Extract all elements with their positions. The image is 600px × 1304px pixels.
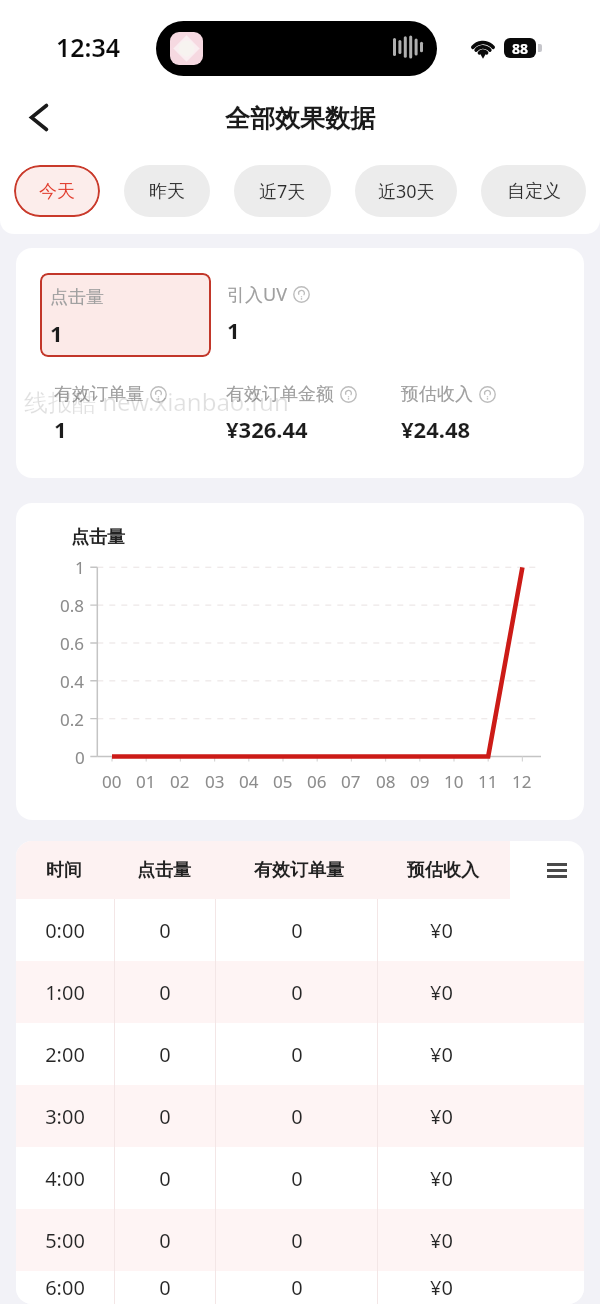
staticText: 0: [159, 1103, 171, 1130]
button[interactable]: Back: [14, 92, 64, 142]
button[interactable]: 5:00: [16, 1209, 584, 1271]
staticText: 预估收入: [407, 859, 479, 882]
staticText: 5:00: [45, 1227, 85, 1254]
button[interactable]: 1:00: [16, 961, 584, 1023]
staticText: 01: [136, 770, 156, 792]
staticText: 昨天: [149, 180, 185, 203]
button[interactable]: 今天: [14, 165, 100, 217]
staticText: 4:00: [45, 1165, 85, 1192]
staticText: 点击量: [71, 526, 125, 549]
staticText: 12: [512, 770, 532, 792]
staticText: 1: [75, 556, 85, 578]
staticText: 03: [205, 770, 225, 792]
staticText: 3:00: [45, 1103, 85, 1130]
staticText: 有效订单金额: [226, 383, 334, 406]
staticText: 0: [159, 917, 171, 944]
staticText: 0: [75, 746, 85, 768]
staticText: 今天: [39, 180, 75, 203]
staticText: 全部效果数据: [225, 103, 375, 134]
staticText: ¥0: [430, 917, 453, 944]
staticText: 自定义: [507, 180, 561, 203]
staticText: 0: [159, 1165, 171, 1192]
button[interactable]: 点击量: [40, 273, 211, 357]
button[interactable]: 2:00: [16, 1023, 584, 1085]
staticText: 11: [478, 770, 498, 792]
staticText: 1: [50, 318, 63, 348]
staticText: 引入UV: [227, 282, 287, 307]
staticText: 0.6: [60, 632, 85, 654]
button[interactable]: 0:00: [16, 899, 584, 961]
staticText: 1:00: [45, 979, 85, 1006]
staticText: 有效订单量: [54, 383, 144, 406]
staticText: 1: [227, 315, 240, 345]
staticText: 有效订单量: [254, 859, 344, 882]
button[interactable]: 4:00: [16, 1147, 584, 1209]
button[interactable]: 近30天: [355, 165, 457, 217]
staticText: 预估收入: [401, 383, 473, 406]
staticText: 10: [444, 770, 464, 792]
staticText: 04: [239, 770, 259, 792]
staticText: 6:00: [45, 1274, 85, 1301]
staticText: ¥24.48: [401, 414, 471, 444]
staticText: 时间: [46, 859, 82, 882]
staticText: 0:00: [45, 917, 85, 944]
button[interactable]: 自定义: [481, 165, 586, 217]
staticText: ¥0: [430, 979, 453, 1006]
button[interactable]: 昨天: [124, 165, 210, 217]
button[interactable]: More options: [530, 841, 584, 899]
staticText: 0: [159, 1274, 171, 1301]
staticText: 06: [307, 770, 327, 792]
staticText: 0: [291, 1227, 303, 1254]
staticText: ¥326.44: [226, 414, 308, 444]
staticText: ¥0: [430, 1227, 453, 1254]
staticText: 0: [159, 1041, 171, 1068]
staticText: 02: [170, 770, 190, 792]
staticText: 00: [102, 770, 122, 792]
staticText: 1: [54, 414, 67, 444]
staticText: ¥0: [430, 1041, 453, 1068]
staticText: 07: [341, 770, 361, 792]
staticText: ¥0: [430, 1274, 453, 1301]
staticText: 点击量: [137, 859, 191, 882]
staticText: 88: [512, 39, 529, 58]
staticText: 0.2: [60, 708, 85, 730]
staticText: ¥0: [430, 1103, 453, 1130]
staticText: 0: [159, 1227, 171, 1254]
staticText: 0: [159, 979, 171, 1006]
staticText: 0: [291, 1103, 303, 1130]
staticText: 2:00: [45, 1041, 85, 1068]
staticText: 0: [291, 1041, 303, 1068]
staticText: 05: [273, 770, 293, 792]
button[interactable]: 6:00: [16, 1271, 584, 1304]
button[interactable]: 3:00: [16, 1085, 584, 1147]
staticText: 0: [291, 1274, 303, 1301]
staticText: 0: [291, 917, 303, 944]
staticText: 12:34: [56, 30, 121, 64]
staticText: 0: [291, 1165, 303, 1192]
staticText: 近7天: [259, 179, 306, 204]
staticText: 0: [291, 979, 303, 1006]
staticText: 点击量: [50, 286, 104, 309]
staticText: 线报酷 new.xianbao.fun: [24, 385, 289, 418]
staticText: 0.8: [60, 594, 85, 616]
staticText: 08: [376, 770, 396, 792]
button[interactable]: 近7天: [234, 165, 331, 217]
staticText: 0.4: [60, 670, 85, 692]
staticText: 09: [410, 770, 430, 792]
staticText: ¥0: [430, 1165, 453, 1192]
staticText: 近30天: [378, 179, 435, 204]
